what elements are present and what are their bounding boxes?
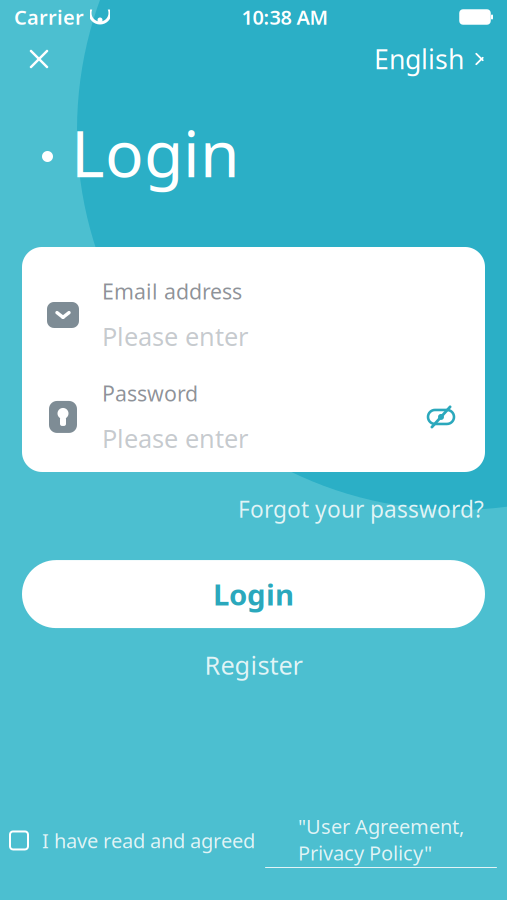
staticText: Please enter	[102, 319, 248, 353]
staticText: 10:38 AM	[241, 4, 328, 30]
staticText: English	[374, 41, 464, 77]
staticText: Login	[213, 575, 294, 614]
staticText: I have read and agreed	[42, 827, 255, 854]
staticText: Forgot your password?	[238, 494, 484, 524]
staticText: Login	[71, 110, 240, 195]
button[interactable]: Login	[22, 560, 485, 628]
button[interactable]: Show password	[421, 400, 461, 434]
button[interactable]: English	[368, 36, 491, 82]
staticText: Email address	[102, 277, 242, 305]
staticText: Password	[102, 379, 198, 407]
staticText: Please enter	[102, 421, 248, 455]
button[interactable]: Register	[186, 640, 320, 690]
staticText: Carrier	[14, 4, 84, 30]
staticText: "User Agreement, Privacy Policy"	[298, 813, 464, 866]
button[interactable]: Close	[16, 36, 62, 82]
staticText: Register	[204, 648, 302, 682]
button[interactable]: I have read and agreed	[0, 807, 507, 874]
button[interactable]: Forgot your password?	[238, 488, 484, 530]
